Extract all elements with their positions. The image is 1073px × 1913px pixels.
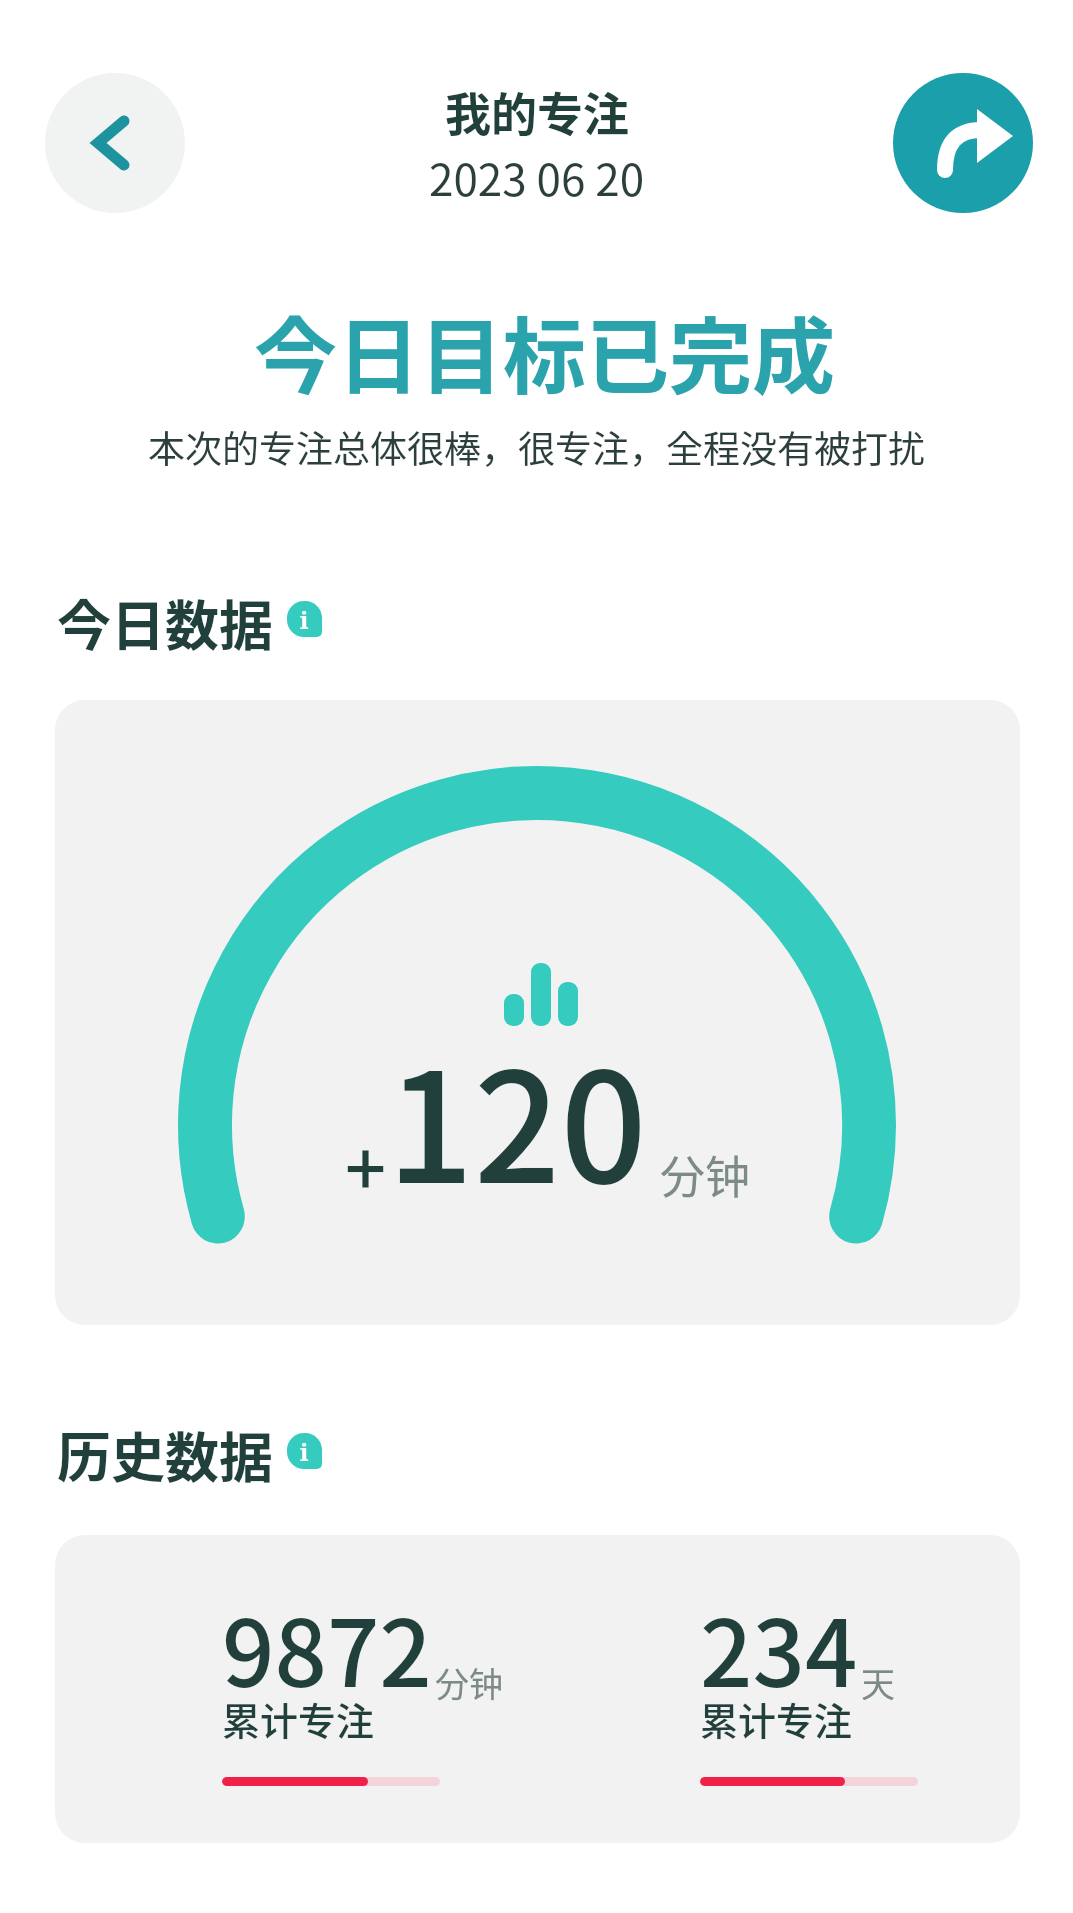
staticText: i <box>300 1435 309 1468</box>
staticText: 分钟 <box>435 1658 503 1707</box>
button[interactable]: + <box>55 700 1020 1325</box>
staticText: 今日目标已完成 <box>8 291 1073 411</box>
staticText: + <box>345 1112 387 1216</box>
staticText: 历史数据 <box>57 1415 273 1493</box>
staticText: 本次的专注总体很棒，很专注，全程没有被打扰 <box>0 420 1073 474</box>
staticText: 9872 <box>222 1580 432 1713</box>
staticText: 累计专注 <box>222 1691 375 1746</box>
staticText: 分钟 <box>660 1142 751 1207</box>
staticText: 今日数据 <box>57 583 273 661</box>
button[interactable]: i <box>287 1433 322 1469</box>
staticText: 累计专注 <box>700 1691 853 1746</box>
button[interactable] <box>893 73 1033 213</box>
staticText: 120 <box>387 1007 647 1227</box>
button[interactable]: i <box>287 601 322 637</box>
staticText: i <box>300 603 309 636</box>
staticText: 天 <box>861 1658 895 1707</box>
button[interactable] <box>45 73 185 213</box>
staticText: 234 <box>700 1580 858 1713</box>
staticText: 2023 06 20 <box>429 145 645 209</box>
button[interactable]: 9872 <box>55 1535 1020 1843</box>
staticText: 我的专注 <box>445 78 629 145</box>
